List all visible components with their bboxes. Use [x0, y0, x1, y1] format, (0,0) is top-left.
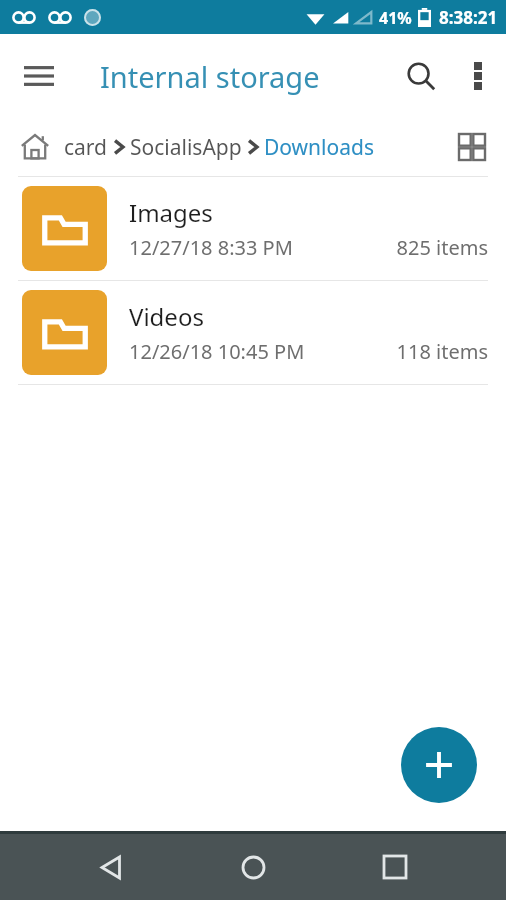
button[interactable]: Downloads	[264, 133, 374, 162]
button[interactable]: Menu	[10, 47, 68, 105]
button[interactable]: Home	[222, 836, 284, 898]
button[interactable]: Search	[392, 47, 450, 105]
button[interactable]: SocialisApp	[130, 133, 242, 162]
button[interactable]: Home	[18, 130, 52, 164]
button[interactable]: Recent apps	[364, 836, 426, 898]
staticText: SocialisApp	[130, 133, 242, 162]
staticText: Internal storage	[100, 57, 320, 96]
staticText: 12/26/18 10:45 PM	[129, 338, 305, 365]
staticText: 118 items	[396, 338, 488, 365]
staticText: 41%	[379, 7, 412, 29]
staticText: 825 items	[396, 234, 488, 261]
staticText: 12/27/18 8:33 PM	[129, 234, 293, 261]
button[interactable]: Back	[80, 836, 142, 898]
staticText: 8:38:21	[439, 6, 498, 29]
button[interactable]: Add	[401, 727, 477, 803]
staticText: Downloads	[264, 133, 374, 162]
button[interactable]: card	[64, 133, 108, 162]
staticText: card	[64, 133, 108, 162]
button[interactable]: Images	[0, 177, 506, 280]
staticText: Videos	[129, 300, 204, 333]
staticText: Images	[129, 196, 213, 229]
button[interactable]: Videos	[0, 281, 506, 384]
button[interactable]: Grid view	[450, 125, 494, 169]
button[interactable]: More options	[450, 48, 506, 104]
